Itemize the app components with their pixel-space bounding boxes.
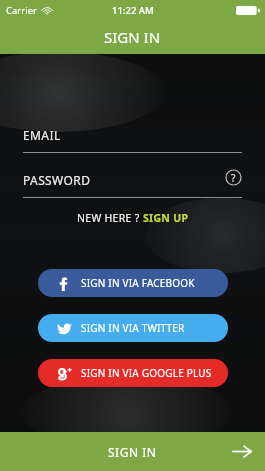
staticText: 11:22 AM [112, 4, 154, 17]
other: Continue [233, 445, 251, 458]
staticText: SIGN IN [108, 444, 157, 460]
button[interactable]: SIGN IN [0, 432, 265, 471]
button[interactable]: PASSWORD [23, 172, 242, 198]
staticText: SIGN IN VIA TWITTER [81, 321, 185, 335]
staticText: NEW HERE ? [77, 211, 140, 225]
staticText: PASSWORD [23, 172, 91, 188]
staticText: SIGN UP [143, 211, 189, 225]
button[interactable]: SIGN IN VIA GOOGLE PLUS [38, 359, 228, 387]
button[interactable]: SIGN IN VIA TWITTER [38, 314, 228, 342]
button[interactable]: SIGN IN VIA FACEBOOK [38, 269, 228, 297]
staticText: SIGN IN VIA GOOGLE PLUS [81, 366, 212, 380]
button[interactable]: EMAIL [23, 127, 242, 153]
staticText: Carrier [6, 4, 37, 17]
staticText: EMAIL [23, 127, 61, 143]
button[interactable]: Password help [225, 169, 242, 186]
staticText: SIGN IN [104, 27, 161, 47]
staticText: ? [231, 171, 236, 185]
button[interactable]: NEW HERE ? [71, 208, 195, 228]
staticText: SIGN IN VIA FACEBOOK [81, 276, 195, 290]
